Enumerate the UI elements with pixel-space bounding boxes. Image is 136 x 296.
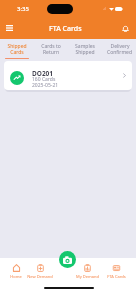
button[interactable]: New Demand bbox=[27, 260, 53, 282]
staticText: Shipped bbox=[75, 49, 95, 56]
staticText: 2025-05-21 bbox=[32, 82, 59, 89]
button[interactable]: Delivery bbox=[102, 41, 136, 58]
staticText: Delivery bbox=[110, 43, 130, 50]
button[interactable]: Scan bbox=[59, 251, 76, 268]
staticText: DO201 bbox=[32, 69, 54, 78]
staticText: Return bbox=[43, 49, 59, 56]
button[interactable]: Cards to bbox=[34, 41, 68, 58]
staticText: Home bbox=[10, 274, 22, 279]
button[interactable]: Home bbox=[3, 260, 29, 282]
button[interactable]: Notifications bbox=[119, 22, 132, 35]
staticText: 3:35 bbox=[17, 5, 29, 13]
staticText: New Demand bbox=[27, 274, 53, 279]
button[interactable]: DO201 bbox=[4, 61, 132, 90]
staticText: My Demand bbox=[76, 274, 99, 279]
staticText: FTA Cards bbox=[49, 24, 82, 34]
staticText: 160 Cards bbox=[32, 76, 56, 83]
button[interactable]: FTA Cards bbox=[103, 260, 129, 282]
staticText: FTA Cards bbox=[107, 274, 126, 279]
staticText: Shipped bbox=[7, 43, 27, 50]
button[interactable]: Menu bbox=[2, 21, 16, 35]
staticText: Confirmed bbox=[107, 49, 132, 56]
staticText: Cards bbox=[10, 49, 24, 56]
staticText: Cards to bbox=[41, 43, 61, 50]
button[interactable]: My Demand bbox=[74, 260, 100, 282]
staticText: Samples bbox=[75, 43, 95, 50]
button[interactable]: Shipped bbox=[0, 41, 34, 59]
button[interactable]: Samples bbox=[68, 41, 102, 58]
